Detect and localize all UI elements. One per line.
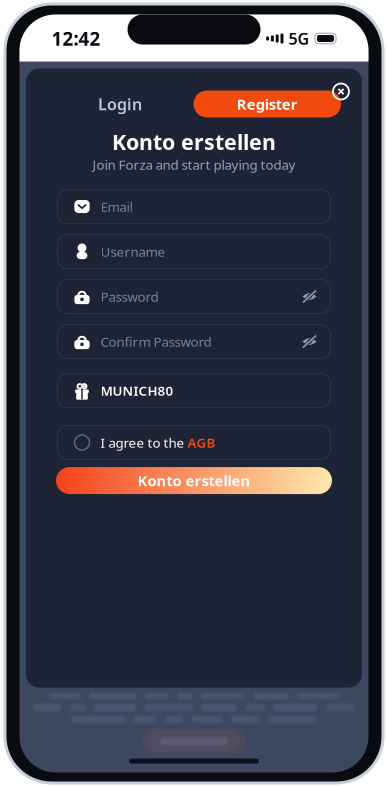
button[interactable]: Password — [57, 279, 330, 313]
button[interactable]: MUNICH80 — [57, 373, 330, 407]
button[interactable]: Close — [333, 83, 349, 99]
button[interactable]: Register — [193, 90, 341, 117]
staticText: Confirm Password — [100, 333, 211, 350]
button[interactable]: Konto erstellen — [56, 467, 332, 494]
button[interactable]: I agree to the — [57, 425, 330, 459]
staticText: AGB — [187, 434, 215, 451]
staticText: Email — [100, 198, 132, 215]
staticText: MUNICH80 — [100, 382, 173, 399]
button[interactable]: Email — [57, 189, 330, 223]
staticText: Username — [100, 243, 165, 260]
staticText: Login — [98, 93, 142, 115]
staticText: I agree to the — [100, 434, 187, 451]
button[interactable]: Username — [57, 234, 330, 268]
button[interactable]: Login — [80, 90, 160, 117]
staticText: Password — [100, 288, 158, 305]
staticText: Konto erstellen — [137, 471, 250, 490]
staticText: 5G — [288, 28, 309, 49]
staticText: Konto erstellen — [112, 127, 276, 156]
staticText: Join Forza and start playing today — [92, 156, 295, 173]
staticText: 12:42 — [51, 26, 100, 51]
button[interactable]: Confirm Password — [57, 324, 330, 358]
staticText: Register — [237, 94, 298, 114]
